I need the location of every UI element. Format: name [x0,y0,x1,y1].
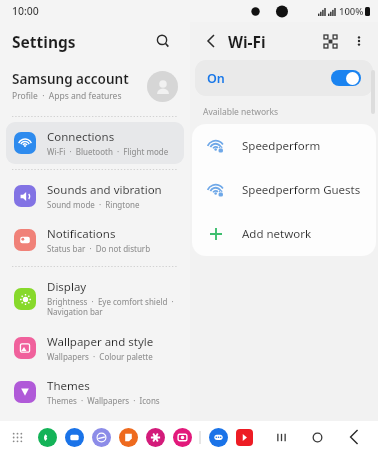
staticText: 10:00 [12,4,39,18]
button[interactable]: On [195,60,373,96]
staticText: Speedperform Guests [242,182,361,198]
button[interactable]: Speedperform Guests [192,168,376,212]
button[interactable]: Add network [192,212,376,256]
staticText: Wallpaper and style [47,334,154,350]
staticText: Speedperform [242,138,321,154]
button[interactable]: Recents [268,424,294,450]
button[interactable]: Notifications [6,219,184,261]
button[interactable]: App [38,428,57,447]
staticText: Wallpapers · Colour palette [47,351,153,362]
button[interactable]: Smart view [318,29,342,53]
button[interactable]: Samsung account [0,60,190,112]
button[interactable]: Connections [6,122,184,164]
button[interactable]: Back [198,29,222,53]
button[interactable]: Chat [209,428,228,447]
button[interactable]: Display [6,272,184,325]
staticText: Themes · Wallpapers · Icons [47,395,160,406]
button[interactable]: More options [348,30,370,52]
staticText: Profile · Apps and features [12,90,122,102]
staticText: Notifications [47,226,116,242]
staticText: Themes [47,378,90,394]
button[interactable]: YouTube [236,429,253,446]
button[interactable]: App [92,428,111,447]
button[interactable]: App [146,428,165,447]
staticText: Display [47,279,87,295]
button[interactable]: Search [150,28,176,54]
staticText: Sounds and vibration [47,182,162,198]
staticText: 100% [339,5,364,18]
button[interactable]: Themes [6,371,184,413]
button[interactable]: Back [340,424,366,450]
staticText: On [207,70,331,87]
button[interactable]: App [173,428,192,447]
button[interactable]: Apps [6,426,28,448]
button[interactable] [331,70,361,86]
button[interactable]: Wallpaper and style [6,327,184,369]
button[interactable]: Speedperform [192,124,376,168]
button[interactable]: Sounds and vibration [6,175,184,217]
staticText: Sound mode · Ringtone [47,199,140,210]
staticText: Wi-Fi [228,31,266,52]
staticText: Add network [242,226,312,242]
button[interactable]: Home [304,424,330,450]
staticText: Settings [12,31,76,52]
staticText: Wi-Fi · Bluetooth · Flight mode [47,146,169,157]
button[interactable]: App [65,428,84,447]
button[interactable]: App [119,428,138,447]
staticText: Status bar · Do not disturb [47,243,151,254]
staticText: Available networks [203,106,279,118]
staticText: Connections [47,129,115,145]
staticText: Brightness · Eye comfort shield · Naviga… [47,296,174,318]
staticText: Samsung account [12,70,129,88]
